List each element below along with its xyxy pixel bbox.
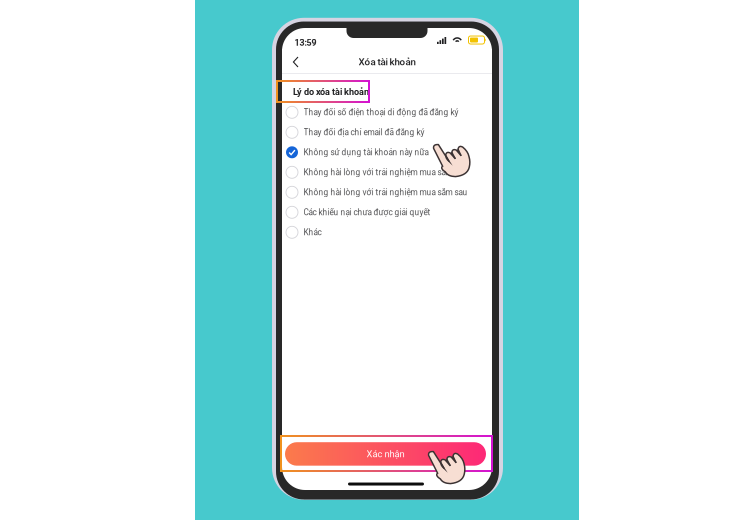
staticText: Khác	[303, 227, 321, 237]
button[interactable]: Xác nhận	[285, 442, 486, 466]
button[interactable]: Back	[286, 50, 305, 74]
staticText: Thay đổi địa chỉ email đã đăng ký	[303, 127, 424, 137]
button[interactable]: Không sử dụng tài khoản này nữa	[286, 142, 482, 162]
staticText: Các khiếu nại chưa được giải quyết	[303, 207, 430, 217]
button[interactable]: Không hài lòng với trải nghiệm mua sắm s…	[286, 182, 482, 202]
button[interactable]: Khác	[286, 222, 482, 242]
button[interactable]: Thay đổi địa chỉ email đã đăng ký	[286, 122, 482, 142]
button[interactable]: Không hài lòng với trải nghiệm mua sắm	[286, 162, 482, 182]
button[interactable]: Thay đổi số điện thoại di động đã đăng k…	[286, 102, 482, 122]
staticText: Không sử dụng tài khoản này nữa	[303, 147, 428, 157]
button[interactable]: Các khiếu nại chưa được giải quyết	[286, 202, 482, 222]
staticText: Lý do xóa tài khoản	[293, 87, 369, 97]
staticText: 13:59	[294, 37, 316, 48]
staticText: Xóa tài khoản	[358, 56, 415, 68]
staticText: Không hài lòng với trải nghiệm mua sắm s…	[303, 187, 467, 197]
staticText: Không hài lòng với trải nghiệm mua sắm	[303, 167, 452, 177]
staticText: Thay đổi số điện thoại di động đã đăng k…	[303, 107, 458, 117]
staticText: Xác nhận	[366, 448, 404, 459]
